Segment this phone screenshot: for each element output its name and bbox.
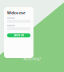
staticText: Need Help? [23, 57, 40, 61]
button[interactable]: Need Help? [23, 57, 40, 61]
staticText: Welcome [7, 10, 25, 15]
button[interactable]: SIGN IN [7, 33, 30, 37]
staticText: SIGN IN [14, 33, 24, 37]
